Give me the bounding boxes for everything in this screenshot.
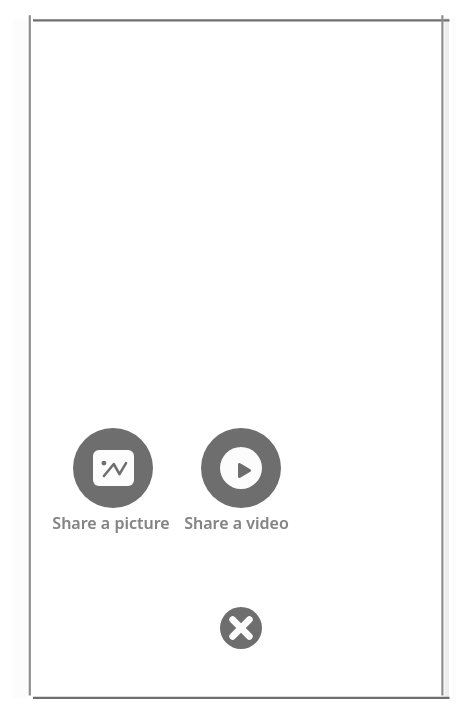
- button[interactable]: Share a picture: [39, 428, 182, 534]
- staticText: Share a video: [184, 512, 289, 534]
- button[interactable]: Share a video: [165, 428, 308, 534]
- staticText: Share a picture: [52, 512, 170, 534]
- button[interactable]: Close: [220, 607, 262, 649]
